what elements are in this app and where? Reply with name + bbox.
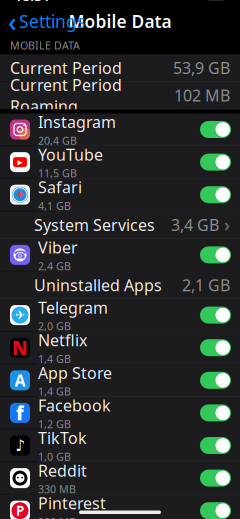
staticText: 11,5 GB <box>38 166 77 180</box>
staticText: Reddit <box>38 460 87 481</box>
staticText: Current Period <box>10 57 122 78</box>
button[interactable]: ‹ <box>0 6 93 36</box>
staticText: App Store <box>38 362 112 383</box>
staticText: › <box>224 213 230 236</box>
button[interactable]: ✈ <box>0 299 240 331</box>
button[interactable]: ▶ <box>0 146 240 178</box>
staticText: 2,0 GB <box>38 319 71 333</box>
staticText: MOBILE DATA <box>10 38 80 52</box>
button[interactable]: A <box>0 364 240 396</box>
staticText: A <box>14 370 25 391</box>
staticText: Safari <box>38 176 82 198</box>
staticText: 2,4 GB <box>38 259 71 273</box>
staticText: Settings <box>19 10 85 33</box>
button[interactable]: f <box>0 397 240 429</box>
staticText: Mobile Data <box>68 10 171 33</box>
staticText: N <box>12 335 28 360</box>
staticText: 1,4 GB <box>38 352 71 366</box>
staticText: 53,9 GB <box>173 57 230 78</box>
staticText: ♪ <box>15 436 25 455</box>
staticText: Pinterest <box>38 492 106 514</box>
staticText: ✈ <box>15 308 25 322</box>
staticText: ✦ <box>15 188 25 201</box>
button[interactable]: Reddit <box>0 462 240 494</box>
staticText: TikTok <box>38 427 87 448</box>
button[interactable]: ☎ <box>0 239 240 271</box>
staticText: 280 MB <box>38 515 76 519</box>
staticText: 18:31 <box>14 0 50 5</box>
staticText: System Services <box>34 214 155 235</box>
staticText: 1,0 GB <box>38 449 71 464</box>
staticText: Viber <box>38 237 78 258</box>
staticText: 3,4 GB <box>171 214 219 235</box>
staticText: Uninstalled Apps <box>34 274 162 296</box>
staticText: ☎ <box>13 249 26 261</box>
staticText: P <box>16 502 24 519</box>
button[interactable]: ✦ <box>0 179 240 211</box>
staticText: 20,4 GB <box>38 133 77 148</box>
staticText: 2,1 GB <box>182 274 230 296</box>
button[interactable]: P <box>0 495 240 519</box>
staticText: 1,4 GB <box>38 384 71 398</box>
staticText: 330 MB <box>38 482 76 496</box>
button[interactable]: Instagram <box>0 113 240 145</box>
staticText: Telegram <box>38 297 108 318</box>
staticText: YouTube <box>38 144 103 165</box>
button[interactable]: ♪ <box>0 429 240 461</box>
staticText: ▶ <box>17 158 22 166</box>
button[interactable]: N <box>0 332 240 364</box>
staticText: Facebook <box>38 395 111 416</box>
staticText: ‹ <box>8 4 17 39</box>
button[interactable]: System Services <box>0 211 240 238</box>
staticText: Instagram <box>38 111 116 132</box>
staticText: f <box>16 400 24 425</box>
staticText: 1,2 GB <box>38 417 71 431</box>
staticText: Netflix <box>38 329 87 351</box>
staticText: 102 MB <box>174 85 230 106</box>
staticText: Current Period Roaming <box>10 74 122 117</box>
staticText: 4,1 GB <box>38 199 71 213</box>
